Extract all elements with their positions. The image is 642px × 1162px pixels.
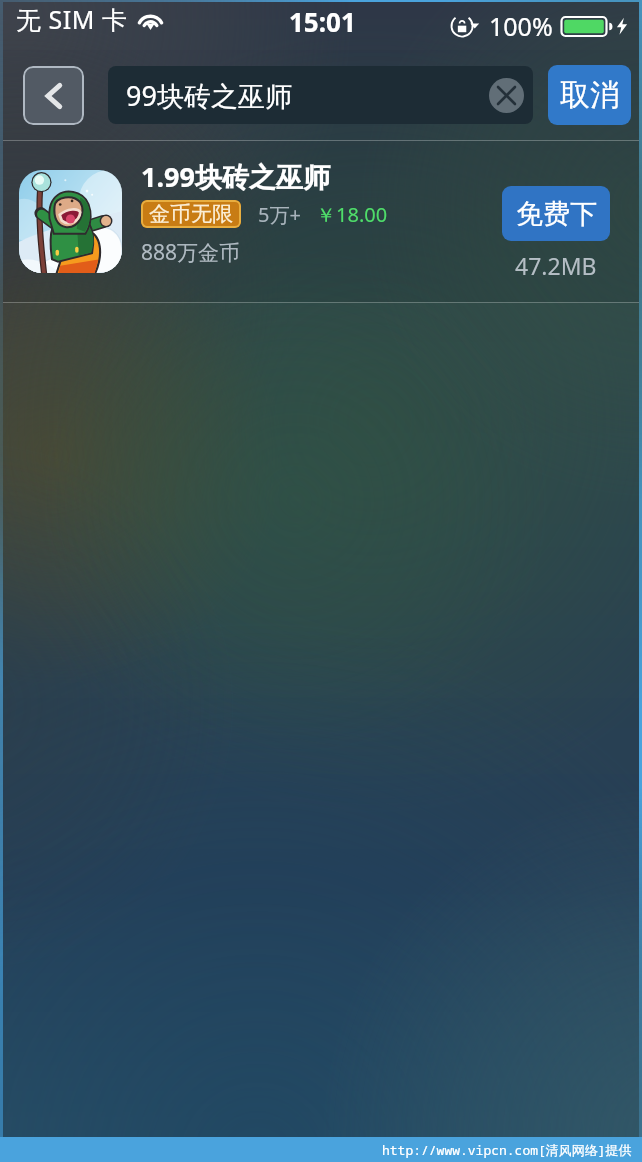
- staticText: ￥18.00: [316, 201, 388, 228]
- staticText: 47.2MB: [515, 250, 597, 281]
- staticText: 无 SIM 卡: [16, 2, 128, 36]
- staticText: 取消: [560, 76, 620, 114]
- staticText: 100%: [489, 9, 553, 43]
- staticText: 888万金币: [141, 238, 241, 267]
- button[interactable]: 免费下: [502, 186, 610, 241]
- staticText: 免费下: [516, 197, 597, 231]
- staticText: 99块砖之巫师: [126, 77, 292, 114]
- staticText: 1.99块砖之巫师: [141, 158, 330, 195]
- staticText: 15:01: [289, 4, 356, 39]
- button[interactable]: 1.99块砖之巫师: [3, 141, 639, 302]
- button[interactable]: 99块砖之巫师: [108, 66, 533, 124]
- button[interactable]: 取消: [548, 65, 631, 125]
- staticText: http://www.vipcn.com[清风网络]提供: [382, 1141, 632, 1159]
- staticText: 5万+: [258, 201, 301, 228]
- button[interactable]: Clear text: [489, 78, 524, 113]
- button[interactable]: Back: [23, 66, 84, 125]
- staticText: 金币无限: [149, 201, 233, 227]
